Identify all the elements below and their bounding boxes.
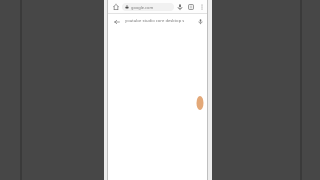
button[interactable]: Back <box>111 16 122 27</box>
staticText: youtube studio core desktop s <box>125 18 185 24</box>
button[interactable]: google.com <box>122 3 174 11</box>
button[interactable]: Home <box>110 1 121 12</box>
staticText: google.com <box>131 5 154 10</box>
button[interactable]: More options <box>196 1 207 12</box>
button[interactable]: Tabs <box>185 1 196 12</box>
button[interactable]: Voice search <box>195 16 205 26</box>
button[interactable]: Voice search <box>174 1 185 12</box>
button[interactable]: youtube studio core desktop s <box>125 18 194 24</box>
